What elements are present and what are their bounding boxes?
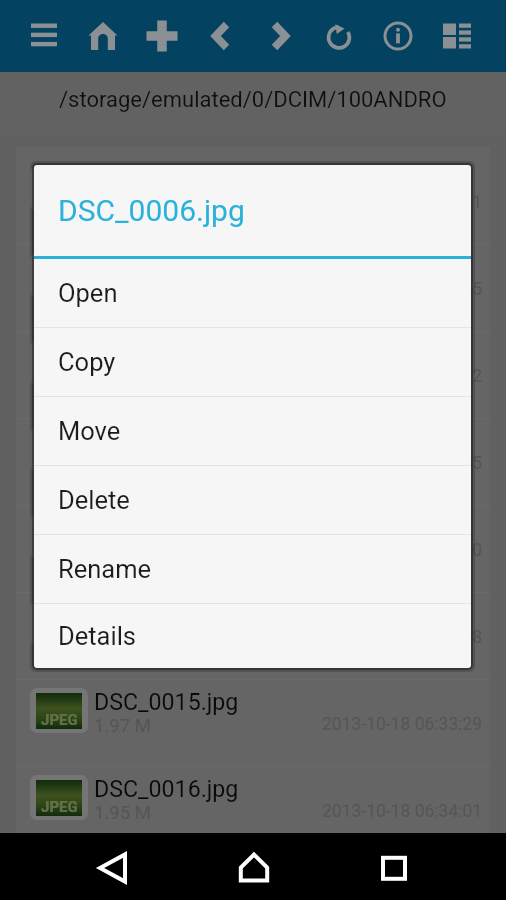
staticText: 2013-10-18 06:33:29 <box>322 714 483 735</box>
button[interactable]: JPEG <box>16 245 490 331</box>
button[interactable]: JPEG <box>16 332 490 418</box>
staticText: 2013-10-18 06:31:12 <box>322 366 483 387</box>
button[interactable]: Move <box>34 397 471 465</box>
staticText: JPEG <box>41 276 78 294</box>
button[interactable]: JPEG <box>16 506 490 592</box>
button[interactable]: Delete <box>34 466 471 534</box>
staticText: DSC_0016.jpg <box>94 775 239 802</box>
button[interactable]: Menu <box>14 0 73 72</box>
staticText: JPEG <box>41 189 78 207</box>
staticText: 2013-10-18 06:34:33 <box>322 868 483 889</box>
staticText: JPEG <box>41 363 78 381</box>
button[interactable]: Refresh <box>309 0 368 72</box>
button[interactable]: Back <box>79 833 149 900</box>
staticText: Open <box>58 278 118 308</box>
staticText: DSC_0017.jpg <box>94 843 239 870</box>
staticText: Rename <box>58 554 152 584</box>
button[interactable]: Back <box>191 0 250 72</box>
button[interactable]: Rename <box>34 535 471 603</box>
button[interactable]: JPEG <box>16 767 490 853</box>
staticText: 2013-10-18 06:32:58 <box>322 627 483 648</box>
button[interactable]: Add <box>132 0 191 72</box>
staticText: 2013-10-18 06:30:45 <box>322 279 483 300</box>
button[interactable]: JPEG <box>16 854 490 900</box>
staticText: JPEG <box>41 711 78 729</box>
button[interactable]: Copy <box>34 328 471 396</box>
staticText: /storage/emulated/0/DCIM/100ANDRO <box>59 87 447 113</box>
staticText: Details <box>58 621 137 651</box>
staticText: 2.05 M <box>94 870 151 889</box>
button[interactable]: Recents <box>359 833 429 900</box>
staticText: 1.95 M <box>94 802 151 824</box>
staticText: Delete <box>58 485 130 515</box>
button[interactable]: Open <box>34 259 471 327</box>
staticText: DSC_0010.jpg <box>94 253 239 280</box>
button[interactable]: Info <box>368 0 427 72</box>
button[interactable]: JPEG <box>16 419 490 505</box>
staticText: Move <box>58 416 121 446</box>
staticText: JPEG <box>41 450 78 468</box>
staticText: 1.91 M <box>94 628 151 650</box>
button[interactable]: JPEG <box>16 593 490 679</box>
button[interactable]: Forward <box>250 0 309 72</box>
staticText: DSC_0011.jpg <box>94 340 239 367</box>
staticText: 1.88 M <box>94 280 151 302</box>
button[interactable]: JPEG <box>16 680 490 766</box>
staticText: 1.79 M <box>94 454 151 476</box>
staticText: 2013-10-18 06:32:20 <box>322 540 483 561</box>
staticText: Copy <box>58 347 116 377</box>
staticText: DSC_0015.jpg <box>94 688 239 715</box>
staticText: DSC_0014.jpg <box>94 601 239 628</box>
staticText: 2.04 M <box>94 367 151 389</box>
button[interactable]: JPEG <box>16 158 490 244</box>
staticText: JPEG <box>41 798 78 816</box>
button[interactable]: Details <box>34 604 471 668</box>
button[interactable]: Home <box>219 833 289 900</box>
staticText: 2013-10-18 06:34:01 <box>322 801 483 822</box>
staticText: 2013-10-18 06:31:55 <box>322 453 483 474</box>
staticText: 2.11 M <box>94 193 151 215</box>
staticText: DSC_0013.jpg <box>94 514 239 541</box>
staticText: 2013-10-18 06:30:11 <box>322 192 483 213</box>
staticText: DSC_0006.jpg <box>58 193 245 228</box>
staticText: 1.97 M <box>94 715 151 737</box>
staticText: JPEG <box>41 624 78 642</box>
staticText: DSC_0012.jpg <box>94 427 239 454</box>
button[interactable]: Toggle view <box>427 0 486 72</box>
button[interactable]: Home <box>73 0 132 72</box>
